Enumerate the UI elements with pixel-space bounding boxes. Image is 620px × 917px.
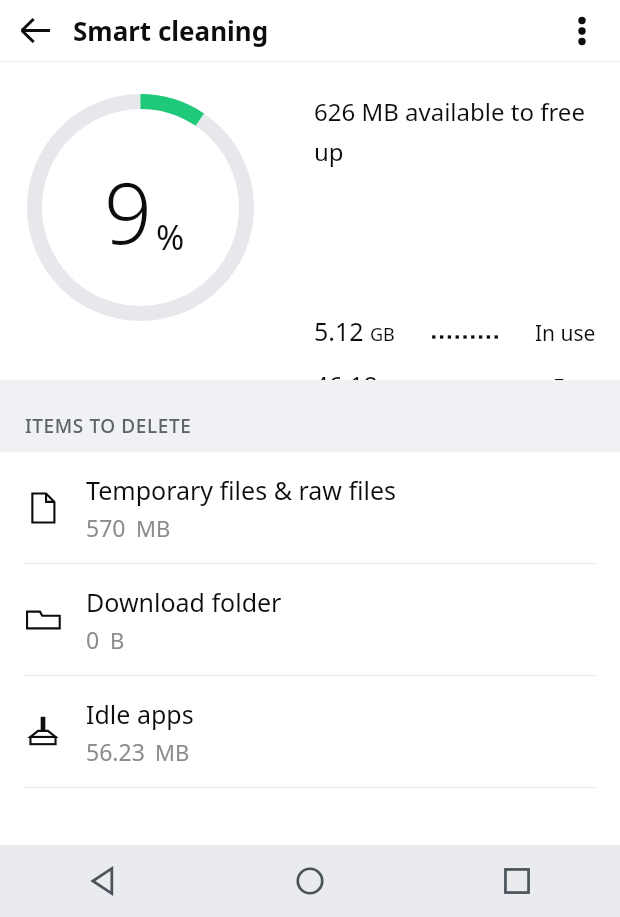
button[interactable]: Back [0, 845, 206, 917]
staticText: 626 MB available to free up [314, 95, 606, 168]
staticText: % [156, 214, 185, 260]
staticText: Smart cleaning [73, 13, 269, 48]
staticText: 570 [86, 512, 126, 543]
button[interactable]: Recents [413, 845, 620, 917]
staticText: MB [155, 737, 190, 767]
staticText: 0 [86, 624, 100, 655]
staticText: GB [370, 322, 395, 347]
staticText: 9 [104, 154, 152, 268]
button[interactable]: Back [4, 0, 66, 61]
staticText: B [110, 625, 125, 655]
button[interactable]: Home [206, 845, 413, 917]
staticText: 5.12 [314, 314, 364, 348]
staticText: In use [535, 319, 596, 348]
staticText: MB [136, 513, 171, 543]
button[interactable]: More options [553, 2, 611, 60]
staticText: ITEMS TO DELETE [25, 413, 192, 439]
button[interactable]: Temporary files & raw files [0, 452, 620, 563]
button[interactable]: Download folder [0, 564, 620, 675]
button[interactable]: Idle apps [0, 676, 620, 787]
staticText: Idle apps [86, 697, 194, 731]
staticText: Temporary files & raw files [86, 473, 397, 507]
staticText: 56.23 [86, 736, 145, 767]
staticText: 46.18 [314, 368, 378, 402]
staticText: Download folder [86, 585, 282, 619]
staticText: Free [553, 373, 596, 402]
staticText: GB [384, 376, 409, 401]
